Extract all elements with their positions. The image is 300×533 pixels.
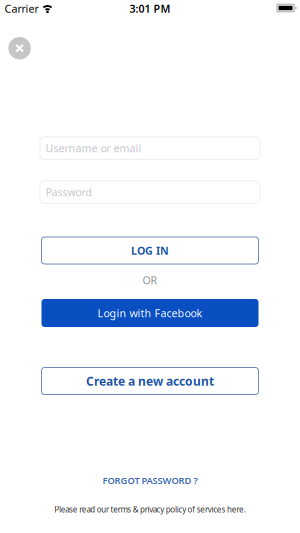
- staticText: FORGOT PASSWORD ?: [102, 474, 197, 487]
- staticText: Password: [45, 185, 92, 199]
- staticText: Please read our terms & privacy policy o…: [54, 504, 246, 515]
- button[interactable]: Please read our terms & privacy policy o…: [54, 504, 246, 515]
- button[interactable]: LOG IN: [41, 237, 258, 264]
- staticText: 3:01 PM: [129, 1, 170, 16]
- staticText: Create a new account: [86, 373, 214, 389]
- button[interactable]: Login with Facebook: [41, 299, 258, 327]
- button[interactable]: Password: [40, 181, 260, 203]
- button[interactable]: Username or email: [40, 137, 260, 159]
- staticText: LOG IN: [131, 243, 169, 258]
- button[interactable]: Create a new account: [41, 367, 258, 394]
- button[interactable]: FORGOT PASSWORD ?: [102, 474, 197, 487]
- staticText: Username or email: [45, 141, 141, 155]
- staticText: OR: [142, 273, 157, 287]
- staticText: Carrier: [4, 1, 38, 16]
- staticText: Login with Facebook: [97, 306, 202, 320]
- button[interactable]: Close: [8, 37, 31, 59]
